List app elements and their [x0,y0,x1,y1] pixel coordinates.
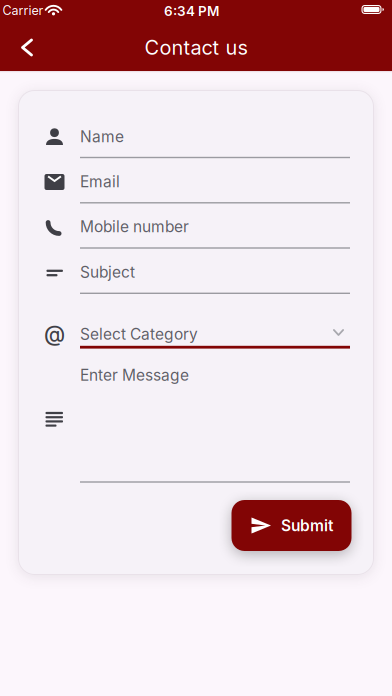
button[interactable]: @ [18,312,374,356]
button[interactable]: Mobile number [18,204,374,250]
staticText: Name [80,127,124,146]
button[interactable]: Submit [231,500,351,551]
staticText: @ [44,321,65,347]
button[interactable]: Subject [18,249,374,295]
staticText: Submit [281,516,333,535]
staticText: Enter Message [80,366,189,384]
staticText: Mobile number [80,217,189,236]
button[interactable]: Back [7,25,47,69]
staticText: 6:34 PM [164,3,219,19]
button[interactable]: Email [18,159,374,205]
staticText: Contact us [144,35,247,60]
staticText: Carrier [2,3,43,18]
staticText: Select Category [80,325,198,343]
button[interactable]: Enter Message [18,355,374,495]
button[interactable]: Name [18,114,374,160]
staticText: Email [80,172,120,191]
staticText: Subject [80,263,135,281]
